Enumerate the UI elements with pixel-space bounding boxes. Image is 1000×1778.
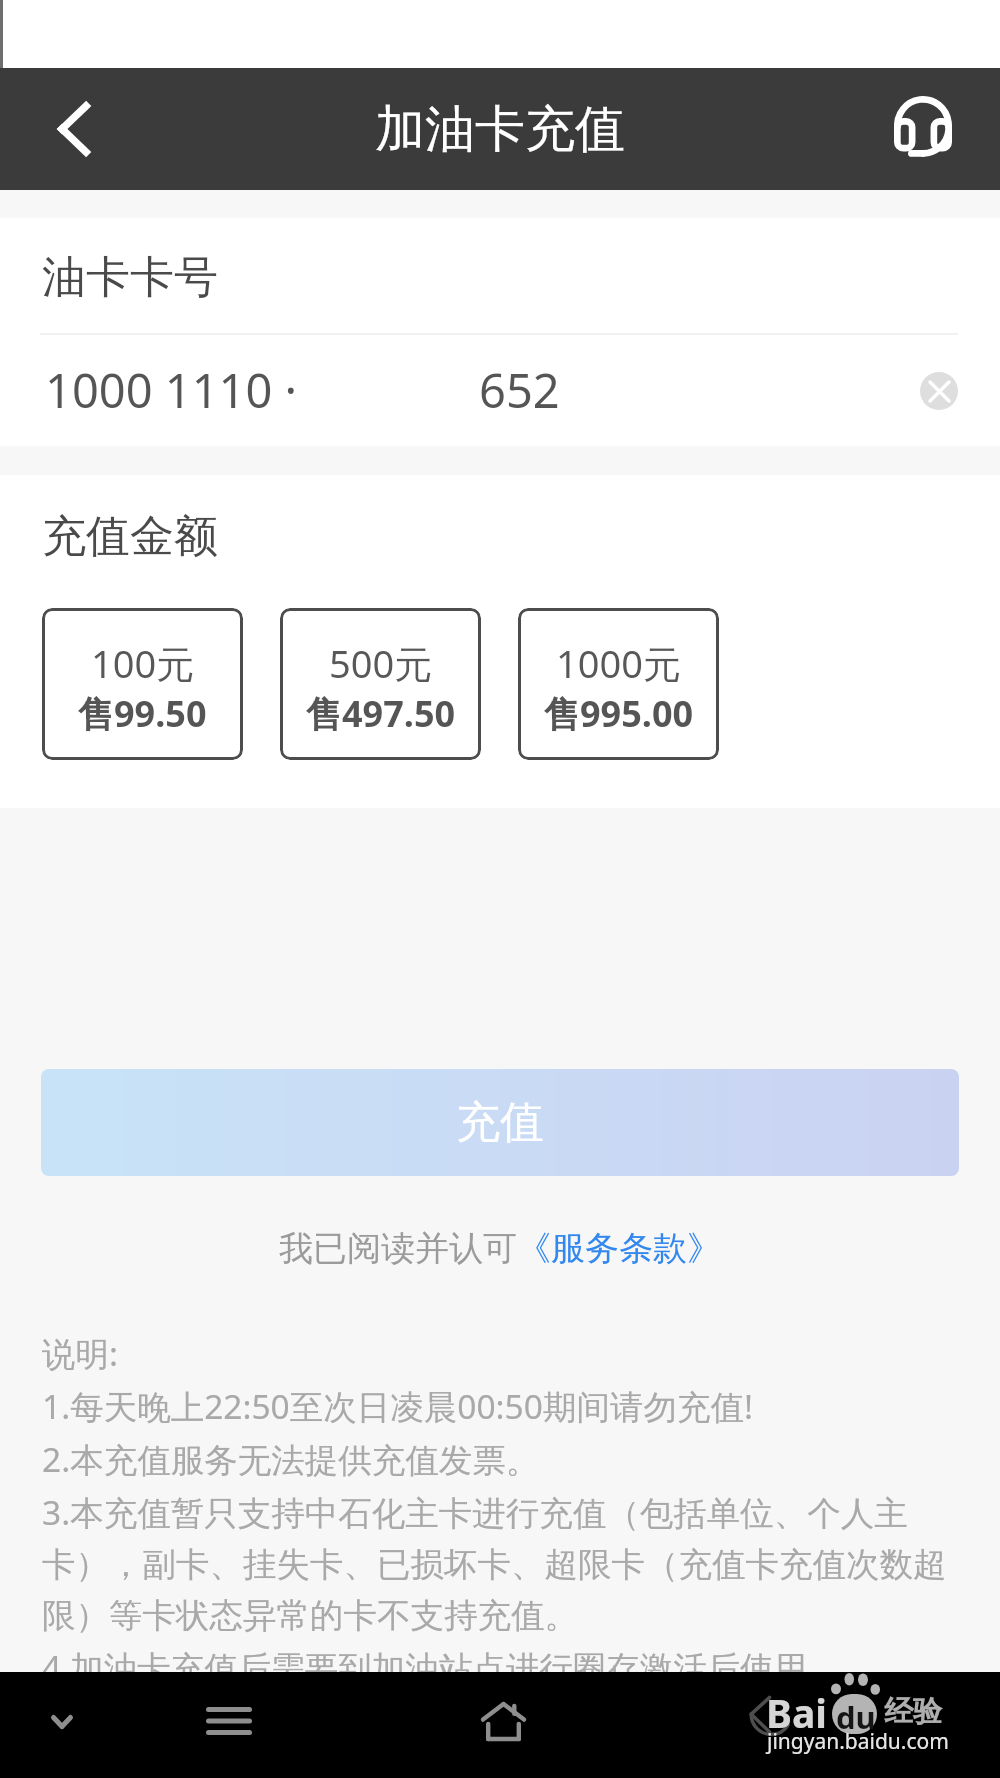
button[interactable]: 500元 — [280, 608, 481, 760]
staticText: 说明: — [42, 1326, 118, 1379]
button[interactable]: 100元 — [42, 608, 243, 760]
staticText: 售99.50 — [78, 689, 207, 738]
staticText: 加油卡充值 — [375, 98, 625, 161]
staticText: 500元 — [329, 637, 433, 689]
staticText: 652 — [479, 358, 560, 422]
staticText: 100元 — [91, 637, 195, 689]
staticText: 《服务条款》 — [517, 1227, 721, 1270]
staticText: Bai — [766, 1686, 827, 1739]
button[interactable]: Back — [0, 68, 124, 190]
staticText: du — [836, 1696, 876, 1738]
staticText: 售497.50 — [306, 689, 456, 738]
button[interactable]: Menu — [179, 1672, 279, 1778]
button[interactable]: Hide keyboard — [18, 1672, 106, 1778]
staticText: 我已阅读并认可 — [279, 1227, 517, 1270]
staticText: 充值 — [456, 1095, 544, 1150]
staticText: 1.每天晚上22:50至次日凌晨00:50期间请勿充值! — [42, 1379, 753, 1432]
staticText: 售995.00 — [544, 689, 694, 738]
button[interactable]: 《服务条款》 — [517, 1227, 721, 1270]
button[interactable]: Customer service — [846, 68, 1000, 190]
staticText: 1000 1110 · — [45, 358, 298, 422]
staticText: 4.加油卡充值后需要到加油站点进行圈存激活后使用。 — [42, 1640, 841, 1693]
staticText: 经验 — [884, 1693, 942, 1730]
button[interactable]: 1000元 — [518, 608, 719, 760]
button[interactable]: Home — [445, 1672, 555, 1778]
staticText: 1000元 — [556, 637, 681, 689]
staticText: jingyan.baidu.com — [767, 1727, 949, 1756]
staticText: 油卡卡号 — [42, 250, 218, 305]
button[interactable]: Clear — [920, 372, 958, 410]
staticText: 充值金额 — [42, 509, 218, 564]
staticText: 2.本充值服务无法提供充值发票。 — [42, 1432, 540, 1485]
staticText: 3.本充值暂只支持中石化主卡进行充值（包括单位、个人主卡），副卡、挂失卡、已损坏… — [42, 1485, 982, 1640]
button[interactable]: 充值 — [41, 1069, 959, 1176]
